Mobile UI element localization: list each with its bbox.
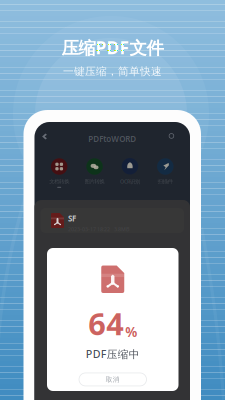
button[interactable]: 图片转换 (77, 158, 112, 188)
button[interactable]: Back (36, 128, 52, 144)
button[interactable]: Search (164, 128, 180, 144)
button[interactable]: SF (40, 208, 184, 233)
staticText: 64 (88, 303, 124, 344)
staticText: OCR识别 (120, 178, 140, 185)
button[interactable]: 取消 (79, 373, 146, 386)
staticText: SF (68, 213, 76, 224)
staticText: 取消 (106, 375, 120, 384)
button[interactable]: 文档转换 (41, 158, 77, 188)
staticText: PDF压缩中 (86, 347, 140, 361)
staticText: 压缩PDF文件 (61, 36, 163, 59)
button[interactable]: OCR识别 (112, 158, 148, 188)
button[interactable]: 扫描件 (148, 158, 183, 188)
staticText: % (125, 323, 137, 341)
staticText: 图片转换 (85, 178, 105, 185)
staticText: 一键压缩，简单快速 (63, 65, 162, 78)
staticText: 扫描件 (158, 178, 173, 185)
staticText: PDFtoWORD (88, 133, 136, 144)
staticText: 文档转换 (49, 178, 69, 185)
